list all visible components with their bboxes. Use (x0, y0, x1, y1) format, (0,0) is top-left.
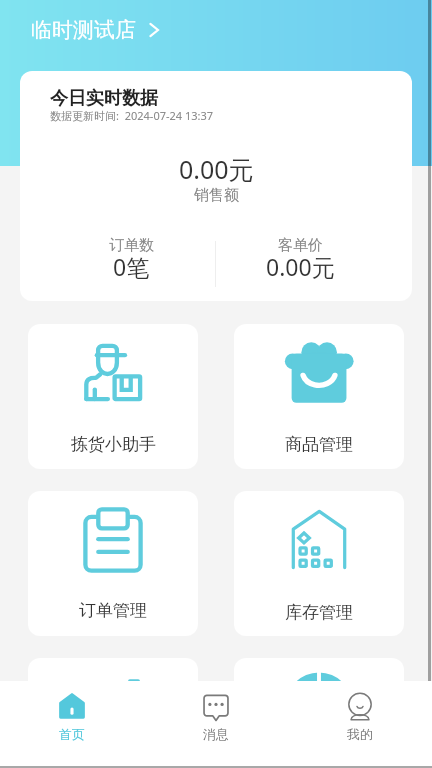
button[interactable]: 库存管理 (234, 491, 404, 636)
button[interactable]: 拣货小助手 (28, 324, 198, 469)
button[interactable]: 客单价 (216, 236, 384, 286)
staticText: 0.00元 (179, 152, 254, 186)
button[interactable]: 数据中心 (234, 658, 404, 768)
staticText: 今日实时数据 (50, 87, 158, 110)
button[interactable]: 首页 (0, 681, 144, 742)
staticText: 商品管理 (285, 434, 353, 455)
staticText: 库存管理 (285, 602, 353, 623)
staticText: 订单数 (109, 236, 154, 255)
button[interactable]: 订单数 (48, 236, 215, 286)
staticText: 客单价 (278, 236, 323, 255)
staticText: 我的 (347, 726, 373, 742)
staticText: 首页 (59, 726, 85, 742)
staticText: 订单管理 (79, 600, 147, 621)
button[interactable]: 订单管理 (28, 491, 198, 636)
staticText: 0笔 (113, 251, 150, 282)
staticText: 拣货小助手 (71, 434, 156, 455)
staticText: 消息 (203, 726, 229, 742)
button[interactable]: 临时测试店 (31, 17, 163, 43)
button[interactable]: 我的 (288, 681, 432, 742)
staticText: 临时测试店 (31, 17, 136, 43)
staticText: 0.00元 (266, 251, 335, 282)
button[interactable]: 配送管理 (28, 658, 198, 768)
button[interactable]: 商品管理 (234, 324, 404, 469)
staticText: 销售额 (194, 186, 239, 205)
staticText: 数据更新时间: 2024-07-24 13:37 (50, 108, 214, 123)
button[interactable]: 消息 (144, 681, 288, 742)
